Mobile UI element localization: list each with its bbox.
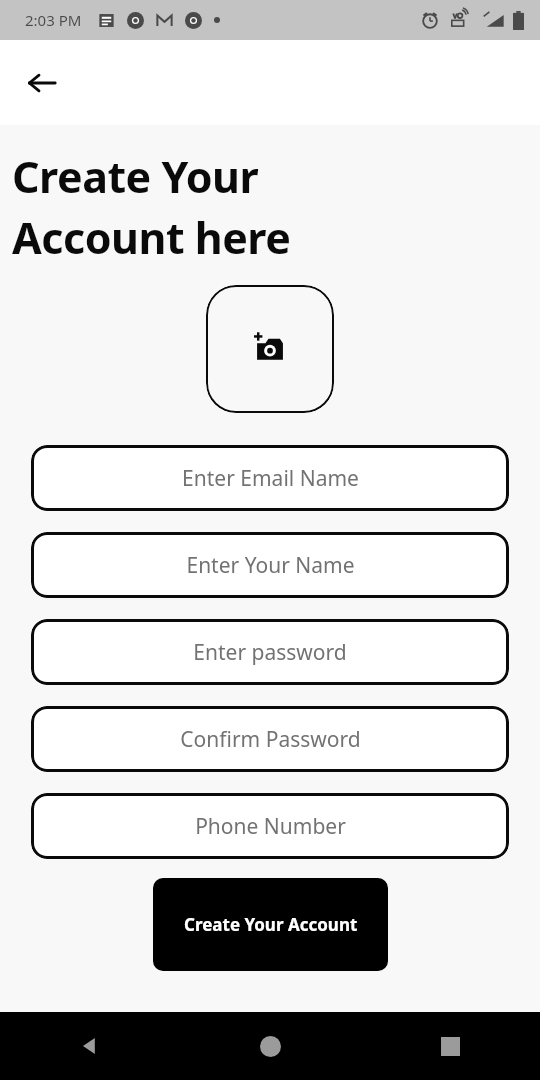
button[interactable]: Back [0,1012,180,1080]
button[interactable]: Enter Your Name [31,532,509,598]
staticText: Enter password [193,638,347,667]
button[interactable]: Back [18,59,66,107]
staticText: 2:03 PM [25,10,82,30]
button[interactable]: Home [180,1012,360,1080]
button[interactable]: Phone Number [31,793,509,859]
button[interactable]: Confirm Password [31,706,509,772]
staticText: Confirm Password [180,725,361,754]
staticText: Create Your Account [184,913,358,936]
staticText: Enter Your Name [186,551,355,580]
button[interactable]: Enter password [31,619,509,685]
staticText: Create Your Account here [12,147,528,266]
staticText: Enter Email Name [182,464,359,493]
button[interactable]: Enter Email Name [31,445,509,511]
button[interactable]: Recent apps [360,1012,540,1080]
staticText: Phone Number [195,812,346,841]
button[interactable]: Add profile photo [206,285,334,413]
button[interactable]: Create Your Account [153,878,388,971]
